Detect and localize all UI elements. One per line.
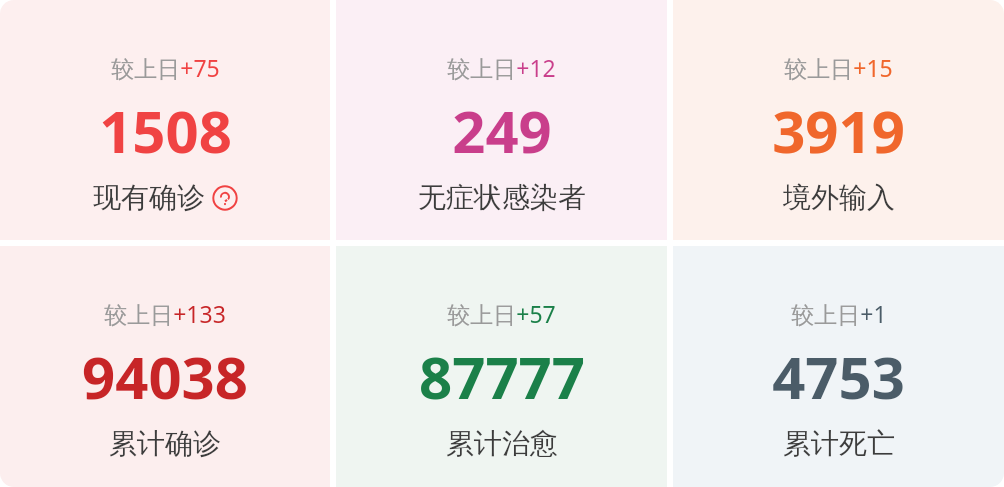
- staticText: 累计治愈: [446, 426, 558, 461]
- staticText: 较上日+15: [784, 52, 893, 83]
- staticText: 249: [452, 91, 552, 170]
- staticText: 境外输入: [783, 180, 895, 215]
- staticText: 较上日+12: [447, 52, 556, 83]
- staticText: 87777: [419, 337, 585, 416]
- button[interactable]: 说明: [212, 185, 238, 211]
- button[interactable]: 较上日+75: [0, 0, 330, 240]
- staticText: 较上日+133: [104, 298, 226, 329]
- staticText: 3919: [772, 91, 905, 170]
- staticText: 无症状感染者: [418, 180, 586, 215]
- staticText: 累计死亡: [783, 426, 895, 461]
- staticText: 94038: [82, 337, 248, 416]
- staticText: 累计确诊: [109, 426, 221, 461]
- button[interactable]: 较上日+12: [336, 0, 667, 240]
- staticText: 较上日+75: [111, 52, 220, 83]
- button[interactable]: 较上日+57: [336, 246, 667, 487]
- staticText: 较上日+57: [447, 298, 556, 329]
- button[interactable]: 较上日+1: [673, 246, 1004, 487]
- staticText: 4753: [772, 337, 905, 416]
- button[interactable]: 较上日+133: [0, 246, 330, 487]
- staticText: 现有确诊: [93, 180, 205, 215]
- staticText: 1508: [99, 91, 232, 170]
- staticText: 较上日+1: [791, 298, 887, 329]
- button[interactable]: 较上日+15: [673, 0, 1004, 240]
